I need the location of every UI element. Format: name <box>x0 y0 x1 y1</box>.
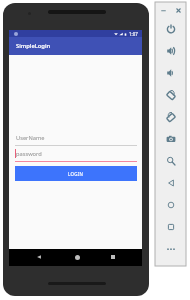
button[interactable]: UserName <box>15 134 137 146</box>
button[interactable]: Back <box>155 172 186 194</box>
button[interactable]: Home <box>71 251 83 263</box>
button[interactable]: More <box>155 238 186 260</box>
button[interactable]: Rotate left <box>155 84 186 106</box>
button[interactable]: LOGIN <box>15 166 137 181</box>
button[interactable]: password <box>15 150 137 162</box>
button[interactable]: Overview <box>155 216 186 238</box>
staticText: password <box>16 150 42 158</box>
staticText: UserName <box>16 134 45 142</box>
staticText: 1:07 <box>129 31 138 37</box>
button[interactable]: Zoom <box>155 150 186 172</box>
button[interactable]: Close <box>173 5 183 15</box>
button[interactable]: Rotate right <box>155 106 186 128</box>
button[interactable]: Volume up <box>155 40 186 62</box>
button[interactable]: Power <box>155 18 186 40</box>
button[interactable]: Back <box>33 251 45 263</box>
button[interactable]: Volume down <box>155 62 186 84</box>
staticText: SimpleLogin <box>16 42 51 50</box>
staticText: LOGIN <box>68 171 84 177</box>
button[interactable]: Take screenshot <box>155 128 186 150</box>
button[interactable]: Minimize <box>158 5 168 15</box>
button[interactable]: Recent apps <box>107 251 119 263</box>
button[interactable]: Home <box>155 194 186 216</box>
